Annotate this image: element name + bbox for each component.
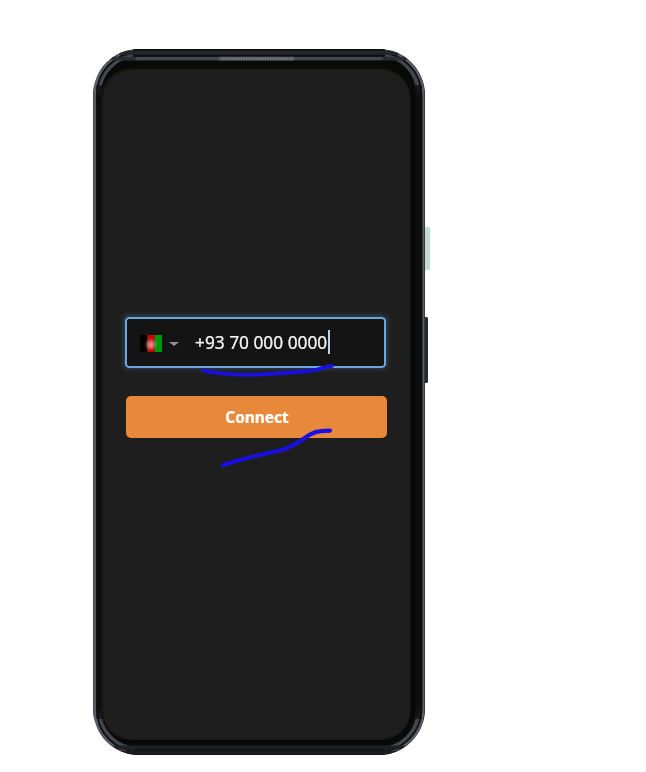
button[interactable]: Select country calling code — [125, 317, 386, 368]
button[interactable]: Select country calling code — [140, 323, 179, 363]
button[interactable]: Connect — [126, 396, 387, 438]
staticText: +93 70 000 0000 — [195, 331, 328, 355]
staticText: Connect — [225, 407, 289, 428]
